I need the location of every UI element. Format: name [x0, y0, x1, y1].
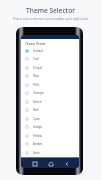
button[interactable]: Teal — [21, 54, 79, 63]
staticText: Green — [33, 100, 42, 104]
staticText: Default — [33, 49, 44, 53]
button[interactable]: Recent apps — [30, 159, 39, 168]
button[interactable]: Red — [21, 105, 79, 114]
staticText: Pick a color scheme to personalize your … — [13, 17, 88, 21]
button[interactable]: Yellow — [21, 131, 79, 140]
button[interactable]: Grey — [21, 148, 79, 157]
staticText: Choose Theme — [25, 42, 46, 46]
button[interactable]: Home — [46, 159, 55, 168]
staticText: Grey — [33, 151, 40, 155]
staticText: Amber — [33, 142, 43, 146]
staticText: Indigo — [33, 125, 43, 129]
staticText: Cyan — [33, 117, 40, 121]
staticText: Pink — [33, 83, 40, 87]
staticText: Red — [33, 108, 39, 112]
staticText: Teal — [33, 57, 39, 61]
staticText: Blue — [33, 74, 40, 78]
button[interactable]: Pink — [21, 80, 79, 89]
button[interactable]: Default — [21, 46, 79, 55]
button[interactable]: Cyan — [21, 114, 79, 123]
button[interactable]: Green — [21, 97, 79, 106]
staticText: Orange — [33, 91, 44, 95]
button[interactable]: Orange — [21, 88, 79, 97]
staticText: Theme Selector — [26, 6, 75, 15]
button[interactable]: Blue — [21, 71, 79, 80]
button[interactable]: Indigo — [21, 122, 79, 131]
staticText: Purple — [33, 66, 43, 70]
button[interactable]: Back — [62, 159, 71, 168]
staticText: Yellow — [33, 134, 42, 138]
button[interactable]: Purple — [21, 63, 79, 72]
button[interactable]: Amber — [21, 139, 79, 148]
